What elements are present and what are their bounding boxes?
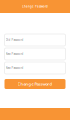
button[interactable]: New Password xyxy=(4,48,65,60)
staticText: Change Password xyxy=(17,81,52,87)
staticText: New Password xyxy=(5,66,23,70)
button[interactable]: Old Password xyxy=(4,34,65,46)
button[interactable]: Change Password xyxy=(4,79,65,89)
staticText: Change Password xyxy=(22,5,48,8)
staticText: New Password xyxy=(5,52,23,56)
button[interactable]: New Password xyxy=(4,62,65,74)
staticText: Old Password xyxy=(5,38,23,42)
